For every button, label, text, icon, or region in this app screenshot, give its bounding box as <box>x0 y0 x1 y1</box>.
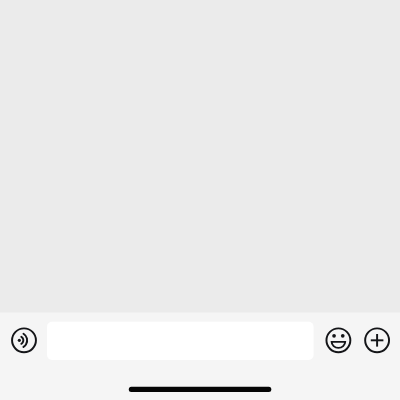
button[interactable]: Add attachment <box>360 323 394 357</box>
button[interactable]: Emoji <box>321 323 355 357</box>
button[interactable]: Voice message <box>7 323 41 357</box>
